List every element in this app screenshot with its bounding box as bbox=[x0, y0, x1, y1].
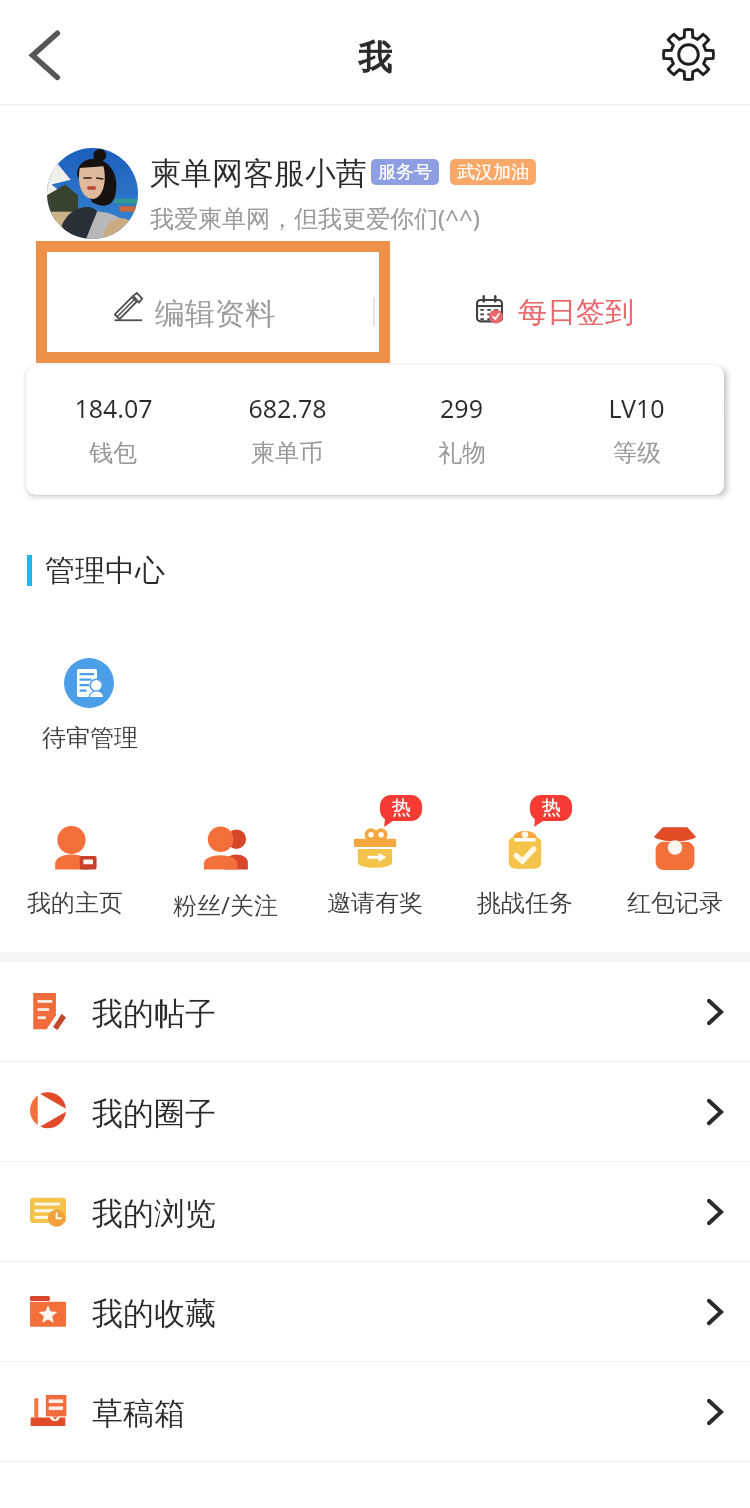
staticText: 299 bbox=[440, 391, 483, 425]
staticText: 我的圈子 bbox=[92, 1094, 216, 1133]
button[interactable]: Avatar bbox=[47, 148, 138, 239]
button[interactable]: 挑战任务 bbox=[450, 786, 600, 926]
button[interactable]: 我的浏览 bbox=[0, 1162, 750, 1262]
staticText: 184.07 bbox=[74, 391, 153, 425]
button[interactable]: 红包记录 bbox=[600, 786, 750, 926]
button[interactable]: 柬单网客服小茜 bbox=[150, 148, 710, 240]
staticText: 挑战任务 bbox=[477, 888, 573, 918]
button[interactable]: 184.07 bbox=[26, 365, 200, 495]
staticText: 管理中心 bbox=[45, 552, 165, 590]
button[interactable]: 粉丝/关注 bbox=[150, 786, 300, 926]
staticText: 我的帖子 bbox=[92, 994, 216, 1033]
staticText: 我的浏览 bbox=[92, 1194, 216, 1233]
button[interactable]: 我的帖子 bbox=[0, 962, 750, 1062]
staticText: 编辑资料 bbox=[155, 295, 275, 333]
button[interactable]: 待审管理 bbox=[25, 650, 153, 760]
button[interactable]: 编辑资料 bbox=[47, 252, 379, 352]
button[interactable]: LV10 bbox=[549, 365, 724, 495]
button[interactable]: 我的圈子 bbox=[0, 1062, 750, 1162]
staticText: 我爱柬单网，但我更爱你们(^^) bbox=[150, 201, 480, 234]
staticText: 红包记录 bbox=[627, 888, 723, 918]
staticText: 邀请有奖 bbox=[327, 888, 423, 918]
staticText: 等级 bbox=[613, 438, 661, 468]
staticText: 我 bbox=[0, 36, 750, 79]
staticText: LV10 bbox=[608, 391, 665, 425]
staticText: 我的主页 bbox=[27, 888, 123, 918]
staticText: 钱包 bbox=[89, 438, 137, 468]
staticText: 服务号 bbox=[378, 161, 432, 184]
button[interactable]: Back bbox=[14, 22, 76, 88]
staticText: 礼物 bbox=[438, 438, 486, 468]
button[interactable]: 299 bbox=[374, 365, 549, 495]
button[interactable]: 682.78 bbox=[200, 365, 374, 495]
button[interactable]: 我的主页 bbox=[0, 786, 150, 926]
staticText: 草稿箱 bbox=[92, 1394, 185, 1433]
staticText: 待审管理 bbox=[42, 723, 138, 753]
staticText: 热 bbox=[392, 796, 411, 820]
button[interactable]: 我的收藏 bbox=[0, 1262, 750, 1362]
staticText: 我的收藏 bbox=[92, 1294, 216, 1333]
staticText: 柬单币 bbox=[251, 438, 323, 468]
button[interactable]: Settings bbox=[662, 28, 715, 81]
button[interactable]: 邀请有奖 bbox=[300, 786, 450, 926]
staticText: 柬单网客服小茜 bbox=[150, 154, 367, 193]
staticText: 热 bbox=[542, 796, 561, 820]
staticText: 每日签到 bbox=[518, 294, 634, 331]
staticText: 武汉加油 bbox=[457, 161, 529, 184]
staticText: 粉丝/关注 bbox=[173, 888, 278, 921]
button[interactable]: 每日签到 bbox=[466, 284, 646, 336]
staticText: 682.78 bbox=[248, 391, 327, 425]
button[interactable]: 草稿箱 bbox=[0, 1362, 750, 1462]
